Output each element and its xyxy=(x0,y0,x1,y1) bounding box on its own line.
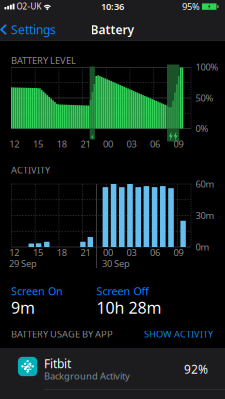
staticText: 21 xyxy=(80,246,90,259)
staticText: Battery xyxy=(90,21,134,37)
staticText: 9m xyxy=(11,297,35,318)
staticText: 0m xyxy=(195,241,209,253)
staticText: 15 xyxy=(33,246,43,259)
staticText: 10h 28m xyxy=(96,297,161,318)
staticText: 18 xyxy=(57,138,67,150)
staticText: 0% xyxy=(195,122,208,135)
staticText: 21 xyxy=(80,138,90,150)
staticText: BATTERY USAGE BY APP xyxy=(11,328,113,340)
staticText: 92% xyxy=(184,361,208,377)
staticText: Screen On xyxy=(11,284,63,298)
staticText: 30m xyxy=(195,209,214,222)
staticText: 10:36 xyxy=(101,0,124,12)
staticText: 09 xyxy=(173,138,183,150)
staticText: SHOW ACTIVITY xyxy=(144,328,213,340)
button[interactable]: SHOW ACTIVITY xyxy=(144,328,213,340)
staticText: 06 xyxy=(150,246,160,259)
staticText: Fitbit xyxy=(44,355,71,371)
staticText: 60m xyxy=(195,178,214,190)
staticText: Screen Off xyxy=(96,284,148,298)
staticText: BATTERY LEVEL xyxy=(11,54,76,67)
staticText: Background Activity xyxy=(44,370,130,382)
staticText: 29 Sep xyxy=(9,257,37,270)
staticText: 00 xyxy=(103,138,113,150)
staticText: 12 xyxy=(9,246,19,259)
staticText: 95% xyxy=(182,0,200,12)
staticText: 15 xyxy=(33,138,43,150)
staticText: 03 xyxy=(126,138,136,150)
button[interactable]: Settings xyxy=(0,21,56,37)
staticText: ACTIVITY xyxy=(11,164,50,176)
staticText: 12 xyxy=(9,138,19,150)
staticText: 50% xyxy=(195,92,213,104)
staticText: 06 xyxy=(150,138,160,150)
staticText: 03 xyxy=(126,246,136,259)
staticText: 00 xyxy=(103,246,113,259)
staticText: O2-UK xyxy=(16,1,41,12)
staticText: 18 xyxy=(57,246,67,259)
staticText: 100% xyxy=(195,61,218,73)
button[interactable]: Fitbit xyxy=(0,348,225,399)
staticText: 09 xyxy=(173,246,183,259)
staticText: Settings xyxy=(11,21,56,37)
staticText: 30 Sep xyxy=(102,257,130,270)
